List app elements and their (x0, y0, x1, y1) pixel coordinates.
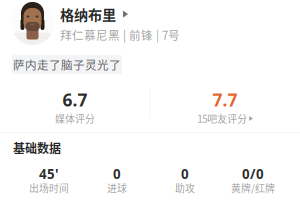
staticText: 0 (181, 165, 189, 183)
staticText: 7.7 (212, 88, 237, 111)
staticText: 基础数据 (13, 139, 61, 156)
staticText: 0 (113, 165, 121, 183)
staticText: 45' (39, 165, 59, 183)
staticText: 助攻 (175, 181, 195, 195)
staticText: 15吧友评分 (197, 111, 247, 126)
staticText: 6.7 (62, 88, 87, 111)
staticText: 出场时间 (29, 181, 69, 195)
staticText: 黄牌/红牌 (231, 181, 275, 195)
staticText: 媒体评分 (55, 111, 95, 126)
staticText: 进球 (107, 181, 127, 195)
button[interactable]: 7.7 (150, 87, 300, 127)
staticText: 格纳布里 (60, 4, 116, 24)
staticText: 萨内走了脑子灵光了 (13, 56, 121, 73)
button[interactable]: 6.7 (0, 87, 150, 127)
button[interactable]: 格纳布里 (11, 2, 300, 45)
staticText: 拜仁慕尼黑 | 前锋 | 7号 (60, 26, 180, 43)
staticText: 0/0 (242, 165, 264, 183)
